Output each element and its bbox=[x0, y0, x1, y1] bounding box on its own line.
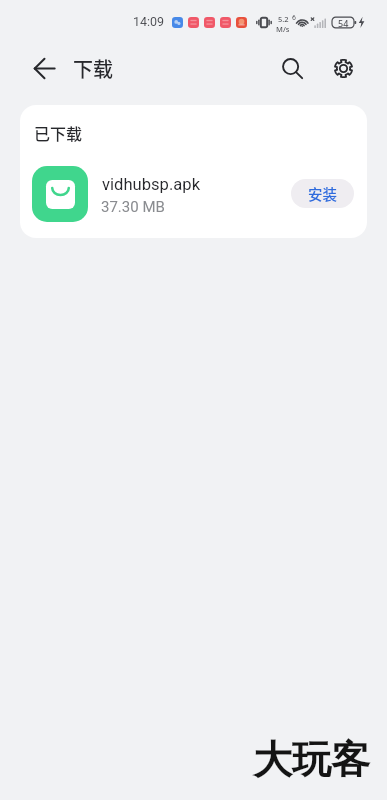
staticText: 已下载 bbox=[34, 121, 83, 144]
staticText: 6 bbox=[292, 14, 296, 22]
staticText: vidhubsp.apk bbox=[102, 175, 201, 194]
staticText: 安装 bbox=[308, 183, 337, 204]
staticText: 下载 bbox=[73, 54, 113, 83]
staticText: 5.2 bbox=[278, 14, 289, 24]
button[interactable]: Back bbox=[26, 50, 62, 86]
button[interactable]: 安装 bbox=[291, 179, 354, 208]
button[interactable]: Search bbox=[274, 50, 310, 86]
staticText: 54 bbox=[338, 17, 349, 29]
button[interactable]: vidhubsp.apk bbox=[20, 154, 367, 228]
button[interactable]: Settings bbox=[325, 50, 361, 86]
staticText: M/s bbox=[276, 24, 290, 34]
staticText: 14:09 bbox=[133, 14, 165, 29]
staticText: 37.30 MB bbox=[101, 198, 165, 216]
staticText: 大玩客 bbox=[253, 735, 370, 784]
